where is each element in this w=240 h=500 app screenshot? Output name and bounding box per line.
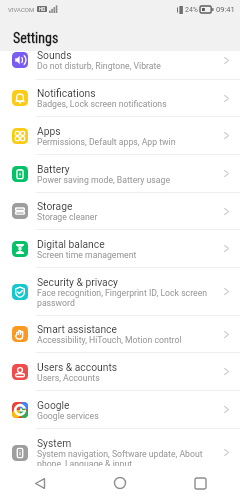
staticText: Users & accounts [37, 361, 118, 373]
staticText: Notifications [37, 87, 96, 99]
button[interactable]: System [0, 429, 240, 476]
staticText: 09:41 [216, 5, 235, 14]
staticText: Face recognition, Fingerprint ID, Lock s… [37, 288, 208, 308]
staticText: Screen time management [37, 250, 137, 260]
staticText: Google [37, 399, 70, 411]
staticText: HD [39, 7, 46, 12]
button[interactable]: Recents [187, 470, 213, 496]
staticText: Storage cleaner [37, 212, 98, 222]
staticText: Users, Accounts [37, 373, 100, 383]
staticText: Apps [37, 125, 61, 137]
staticText: Sounds [37, 49, 72, 61]
staticText: Do not disturb, Ringtone, Vibrate [37, 61, 161, 71]
staticText: VIVACOM [8, 6, 35, 13]
button[interactable]: Google [0, 391, 240, 428]
staticText: Battery [37, 163, 70, 175]
staticText: Power saving mode, Battery usage [37, 175, 171, 185]
staticText: Badges, Lock screen notifications [37, 99, 167, 109]
staticText: Security & privacy [37, 276, 118, 288]
button[interactable]: Security & privacy [0, 268, 240, 315]
staticText: Smart assistance [37, 323, 117, 335]
button[interactable]: Home [107, 470, 133, 496]
staticText: Digital balance [37, 238, 105, 250]
button[interactable]: Smart assistance [0, 316, 240, 352]
staticText: Settings [13, 30, 59, 46]
button[interactable]: Back [27, 470, 53, 496]
staticText: Storage [37, 200, 73, 212]
staticText: Accessibility, HiTouch, Motion control [37, 335, 182, 345]
staticText: System navigation, Software update, Abou… [37, 449, 203, 469]
button[interactable]: Users & accounts [0, 353, 240, 390]
staticText: Permissions, Default apps, App twin [37, 137, 176, 147]
button[interactable]: Digital balance [0, 230, 240, 267]
button[interactable]: Storage [0, 193, 240, 229]
staticText: 24% [185, 6, 198, 14]
staticText: System [37, 437, 72, 449]
button[interactable]: Apps [0, 117, 240, 154]
button[interactable]: Notifications [0, 80, 240, 116]
staticText: Google services [37, 411, 99, 421]
button[interactable]: Sounds [0, 41, 240, 79]
button[interactable]: Battery [0, 155, 240, 192]
